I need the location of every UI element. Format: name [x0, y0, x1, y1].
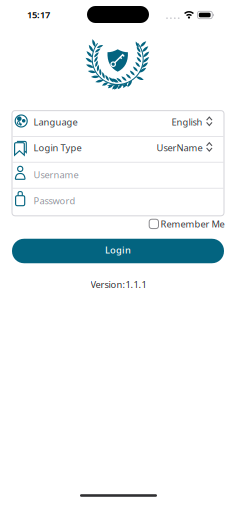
button[interactable]: Login: [12, 239, 224, 263]
button[interactable]: Language: [12, 109, 224, 135]
staticText: Password: [33, 194, 75, 207]
button[interactable]: Remember Me: [11, 217, 224, 231]
staticText: English: [171, 116, 202, 128]
staticText: Username: [33, 168, 78, 181]
staticText: Language: [33, 116, 77, 128]
staticText: Login: [105, 244, 131, 256]
staticText: Version:1.1.1: [90, 278, 146, 291]
button[interactable]: Username: [12, 162, 224, 188]
button[interactable]: Login Type: [12, 135, 224, 161]
staticText: 15:17: [27, 8, 50, 21]
staticText: Login Type: [33, 141, 81, 154]
staticText: UserName: [156, 141, 202, 154]
button[interactable]: Password: [12, 188, 224, 214]
staticText: Remember Me: [160, 218, 224, 230]
